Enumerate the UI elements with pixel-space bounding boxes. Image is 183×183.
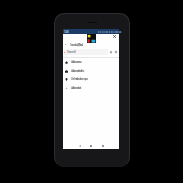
staticText: Adicionar local (71, 86, 81, 90)
staticText: Adicionar casa (71, 60, 81, 64)
button[interactable]: Add destination (114, 50, 118, 54)
button[interactable]: Adicionar casa (63, 58, 119, 66)
button[interactable]: Home (89, 144, 93, 148)
button[interactable]: Definir o local no mapa (63, 75, 119, 83)
button[interactable]: Recents (101, 144, 105, 148)
button[interactable]: Adicionar trabalho (63, 67, 119, 75)
button[interactable]: Sorocaba, SP, Brasil (63, 41, 119, 48)
button[interactable]: Voice search (109, 50, 113, 54)
staticText: 12:46 (64, 30, 69, 34)
staticText: Sorocaba, SP, Brasil (70, 43, 82, 47)
staticText: Adicionar trabalho (71, 69, 84, 73)
staticText: Para onde? (67, 50, 76, 54)
button[interactable]: Back (78, 144, 82, 148)
staticText: Definir o local no mapa (71, 77, 88, 81)
button[interactable]: Adicionar local (63, 84, 119, 92)
button[interactable]: Close (112, 34, 117, 39)
button[interactable]: Para onde? (64, 49, 108, 55)
